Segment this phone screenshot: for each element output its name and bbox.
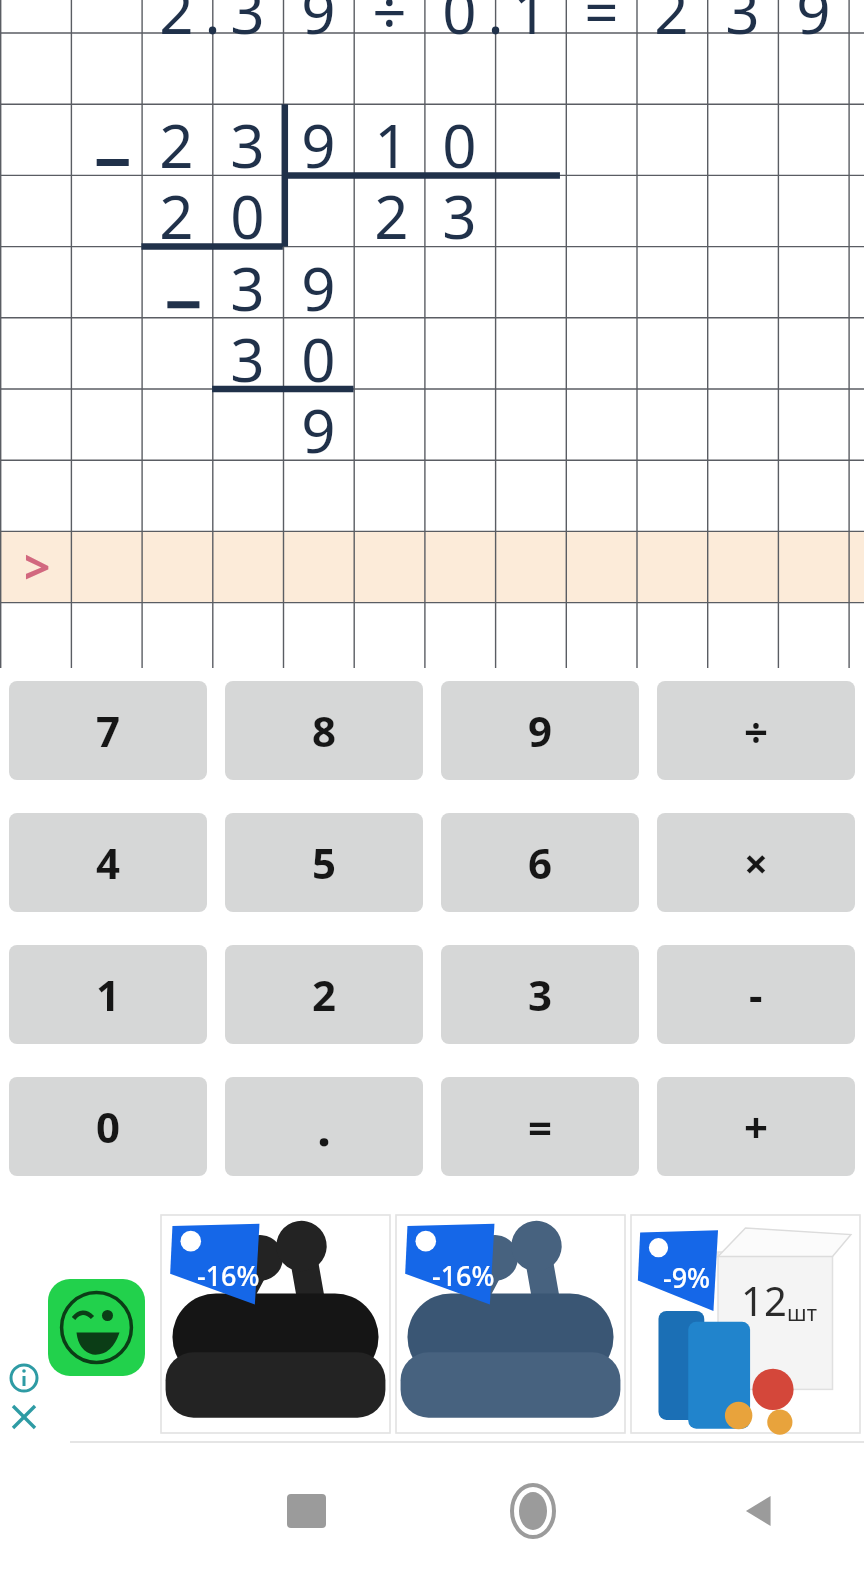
staticText: -9% — [663, 1259, 711, 1296]
staticText: 0 — [442, 0, 477, 41]
staticText: 7 — [96, 702, 121, 759]
button[interactable]: Advertiser — [48, 1279, 145, 1376]
button[interactable]: 6 — [441, 813, 639, 912]
staticText: 9 — [301, 0, 336, 41]
staticText: 3 — [442, 175, 477, 246]
staticText: 9 — [301, 247, 336, 318]
staticText: 3 — [230, 0, 265, 41]
button[interactable]: Ad info — [6, 1360, 44, 1398]
staticText: -16% — [432, 1257, 495, 1294]
staticText: 2 — [159, 0, 194, 41]
staticText: 3 — [230, 104, 265, 175]
button[interactable]: Home — [473, 1465, 593, 1557]
staticText: 9 — [301, 104, 336, 175]
button[interactable]: . — [225, 1077, 423, 1176]
button[interactable]: Next step — [4, 531, 70, 602]
staticText: 9 — [796, 0, 831, 41]
staticText: ÷ — [372, 0, 407, 41]
staticText: 1 — [513, 0, 548, 41]
staticText: . — [487, 0, 504, 41]
button[interactable]: Back — [700, 1465, 820, 1557]
staticText: ÷ — [744, 702, 769, 759]
button[interactable]: × — [657, 813, 855, 912]
button[interactable]: 0 — [9, 1077, 207, 1176]
staticText: 12 — [741, 1273, 787, 1327]
button[interactable]: 3 — [441, 945, 639, 1044]
staticText: 4 — [96, 834, 121, 891]
staticText: . — [317, 1093, 332, 1161]
button[interactable]: 5 — [225, 813, 423, 912]
staticText: > — [24, 535, 51, 598]
staticText: 2 — [159, 104, 194, 175]
button[interactable]: + — [657, 1077, 855, 1176]
button[interactable]: 1 — [9, 945, 207, 1044]
button[interactable]: Close ad — [6, 1398, 44, 1436]
staticText: + — [744, 1098, 769, 1155]
button[interactable]: 8 — [225, 681, 423, 780]
staticText: 9 — [528, 702, 553, 759]
staticText: 0 — [96, 1098, 121, 1155]
staticText: 2 — [312, 966, 337, 1023]
button[interactable]: Recent apps — [246, 1465, 366, 1557]
staticText: 5 — [312, 834, 337, 891]
staticText: . — [204, 0, 221, 41]
staticText: - — [749, 966, 763, 1023]
staticText: × — [744, 834, 769, 891]
button[interactable]: 2 — [225, 945, 423, 1044]
staticText: 6 — [528, 834, 553, 891]
button[interactable]: ÷ — [657, 681, 855, 780]
staticText: 2 — [374, 175, 409, 246]
staticText: шт — [787, 1297, 817, 1327]
staticText: 3 — [528, 966, 553, 1023]
staticText: 0 — [230, 175, 265, 246]
staticText: = — [528, 1098, 553, 1155]
button[interactable]: - — [657, 945, 855, 1044]
button[interactable]: 7 — [9, 681, 207, 780]
staticText: 8 — [312, 702, 337, 759]
staticText: 2 — [654, 0, 689, 41]
staticText: 0 — [442, 104, 477, 175]
staticText: = — [584, 0, 619, 41]
staticText: 3 — [725, 0, 760, 41]
staticText: 2 — [159, 175, 194, 246]
staticText: 1 — [96, 966, 121, 1023]
staticText: 3 — [230, 318, 265, 389]
button[interactable]: Ad product — [161, 1215, 390, 1433]
staticText: 3 — [230, 247, 265, 318]
button[interactable]: Ad product — [396, 1215, 625, 1433]
button[interactable]: 4 — [9, 813, 207, 912]
staticText: -16% — [197, 1257, 260, 1294]
button[interactable]: = — [441, 1077, 639, 1176]
staticText: 9 — [301, 389, 336, 460]
button[interactable]: Ad product — [631, 1215, 860, 1433]
button[interactable]: 9 — [441, 681, 639, 780]
staticText: 1 — [374, 104, 409, 175]
staticText: 0 — [301, 318, 336, 389]
